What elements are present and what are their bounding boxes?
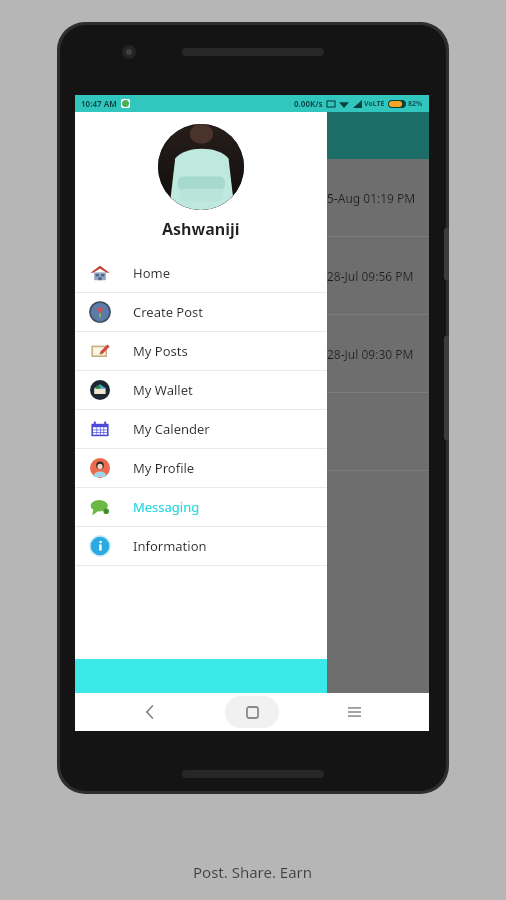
button[interactable]: My Wallet [75,371,327,410]
staticText: 28-Jul 09:30 PM [327,346,414,362]
staticText: Ashwaniji [162,218,240,240]
staticText: Create Post [133,303,204,321]
staticText: 10:47 AM [81,98,117,109]
staticText: 82% [408,99,423,109]
staticText: Home [133,264,170,282]
staticText: 0.00K/s [294,98,323,109]
staticText: Information [133,537,207,555]
button[interactable]: My Posts [75,332,327,371]
button[interactable]: Home [75,254,327,293]
button[interactable]: My Calender [75,410,327,449]
staticText: Messaging [133,498,200,516]
button[interactable]: Home [225,696,279,728]
button[interactable] [75,393,429,471]
staticText: My Calender [133,420,210,438]
button[interactable]: 28-Jul 09:30 PM [75,315,429,393]
button[interactable]: Information [75,527,327,566]
staticText: My Wallet [133,381,193,399]
button[interactable]: Create Post [75,293,327,332]
button[interactable]: Back [131,693,169,731]
button[interactable]: 28-Jul 09:56 PM [75,237,429,315]
button[interactable]: Recent apps [335,693,373,731]
button[interactable]: My Profile [75,449,327,488]
button[interactable]: Messaging [75,488,327,527]
staticText: VoLTE [364,99,385,109]
staticText: 5-Aug 01:19 PM [327,190,416,206]
staticText: 28-Jul 09:56 PM [327,268,414,284]
button[interactable]: 5-Aug 01:19 PM [75,159,429,237]
staticText: My Profile [133,459,195,477]
staticText: Post. Share. Earn [193,862,313,882]
staticText: My Posts [133,342,188,360]
